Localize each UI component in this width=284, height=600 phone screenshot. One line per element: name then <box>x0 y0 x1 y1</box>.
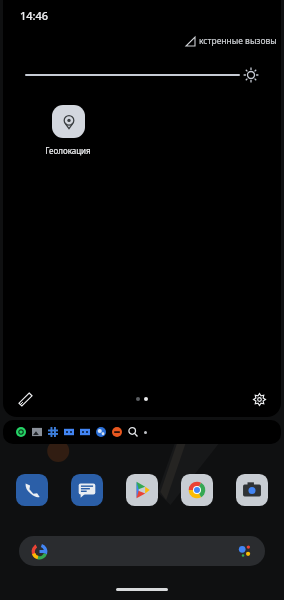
staticText: 14:46 <box>20 8 49 23</box>
button[interactable] <box>3 420 281 444</box>
button[interactable]: Edit tiles <box>12 386 38 412</box>
button[interactable]: Phone <box>16 474 48 506</box>
button[interactable]: Геолокация <box>38 105 98 156</box>
button[interactable]: Play Store <box>126 474 158 506</box>
button[interactable]: Messages <box>71 474 103 506</box>
other: Brightness <box>243 67 259 83</box>
button[interactable]: Brightness <box>25 62 259 88</box>
button[interactable]: Settings <box>246 386 272 412</box>
button[interactable]: Chrome <box>181 474 213 506</box>
staticText: кстренные вызовы <box>199 35 277 47</box>
staticText: Геолокация <box>45 145 91 156</box>
button[interactable]: Camera <box>236 474 268 506</box>
button[interactable]: Google search <box>19 536 265 566</box>
